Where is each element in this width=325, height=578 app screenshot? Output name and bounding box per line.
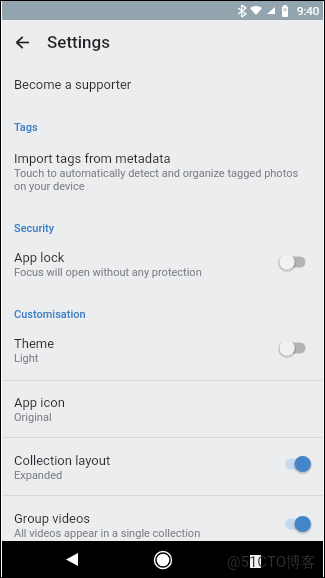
button[interactable]: Import tags from metadata [2,136,323,209]
button[interactable]: App icon [2,381,323,437]
staticText: @51CTO博客 [227,553,316,572]
button[interactable]: Navigate up [2,22,42,62]
button[interactable]: App lock [2,235,323,296]
staticText: App icon [14,395,65,410]
staticText: Settings [47,32,110,52]
staticText: All videos appear in a single collection [14,527,201,540]
button[interactable]: Collection layout [2,438,323,495]
button[interactable]: Back [56,543,88,575]
staticText: Focus will open without any protection [14,266,202,279]
staticText: Collection layout [14,453,111,468]
button[interactable]: Group videos [2,496,323,540]
button[interactable]: Become a supporter [2,64,323,109]
button[interactable]: Home [147,544,179,576]
staticText: App lock [14,250,65,265]
staticText: Customisation [14,308,86,321]
staticText: Group videos [14,511,91,526]
staticText: Touch to automatically detect and organi… [14,167,306,193]
staticText: Light [14,352,39,365]
staticText: Original [14,411,52,424]
staticText: Become a supporter [14,77,132,92]
staticText: 9:40 [297,4,320,17]
staticText: Security [14,222,55,235]
staticText: Tags [14,121,38,134]
staticText: Expanded [14,469,63,482]
staticText: Import tags from metadata [14,151,171,166]
button[interactable]: Theme [2,322,323,380]
staticText: Theme [14,336,55,351]
